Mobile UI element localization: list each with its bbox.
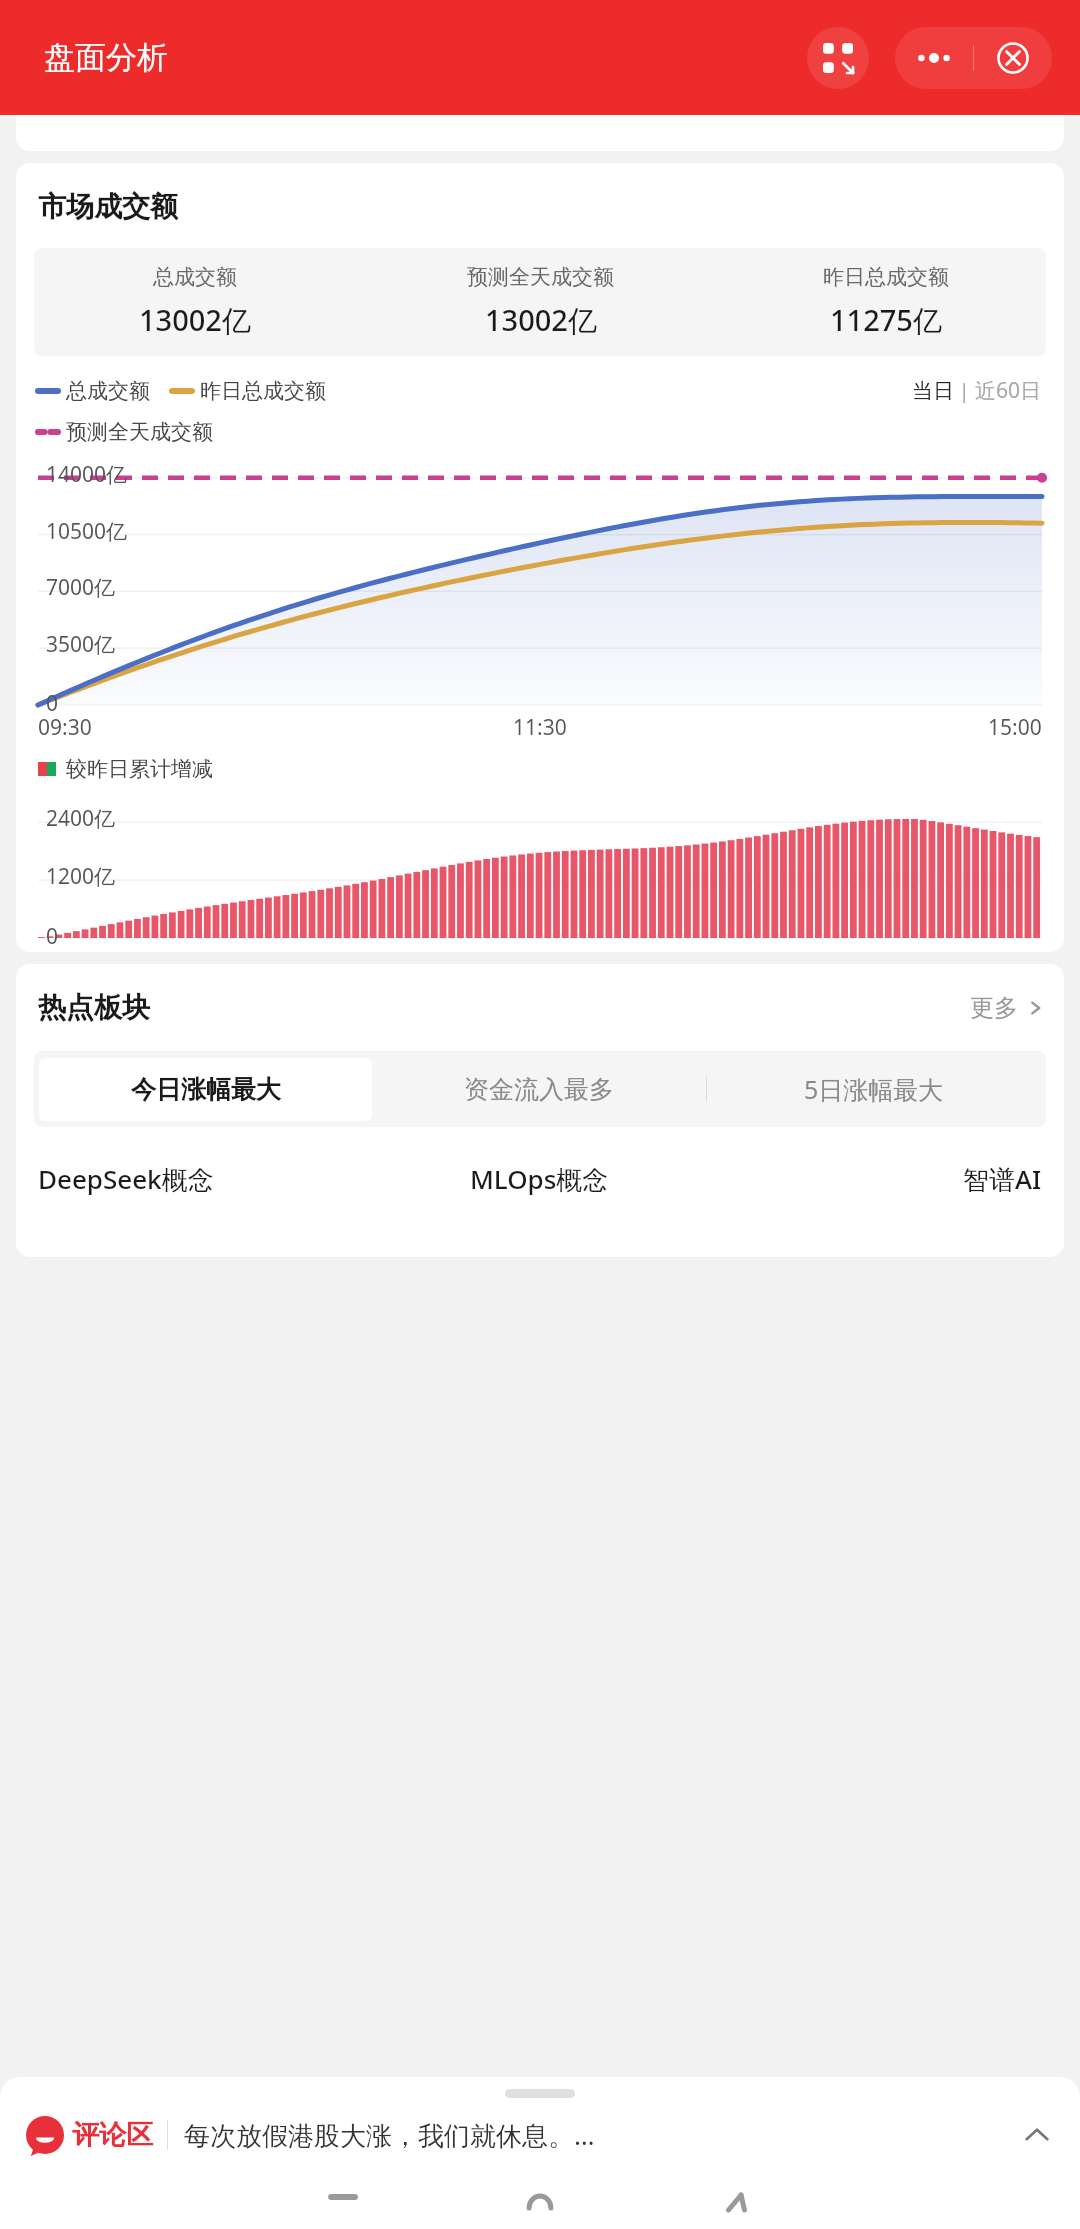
staticText: DeepSeek概念	[38, 1161, 214, 1197]
staticText: 资金流入最多	[464, 1074, 614, 1105]
staticText: 市场成交额	[38, 189, 178, 224]
staticText: 1200亿	[46, 862, 116, 891]
staticText: MLOps概念	[470, 1161, 609, 1197]
staticText: 09:30	[38, 713, 92, 742]
button[interactable]: 昨日总成交额	[172, 378, 326, 404]
staticText: 较昨日累计增减	[66, 756, 213, 782]
button[interactable]: 更多	[970, 993, 1044, 1023]
button[interactable]: 资金流入最多	[372, 1058, 706, 1121]
staticText: 13002亿	[485, 300, 597, 340]
button[interactable]: More options	[895, 27, 973, 89]
button[interactable]: 昨日总成交额	[725, 264, 1046, 340]
button[interactable]: 当日	[912, 378, 954, 404]
staticText: 昨日总成交额	[823, 264, 949, 290]
staticText: 今日涨幅最大	[131, 1074, 281, 1105]
staticText: 昨日总成交额	[200, 378, 326, 404]
staticText: 预测全天成交额	[66, 419, 213, 445]
staticText: 0	[46, 689, 59, 718]
staticText: 预测全天成交额	[467, 264, 614, 290]
staticText: 评论区	[72, 2118, 153, 2152]
button[interactable]: 预测全天成交额	[38, 419, 213, 445]
staticText: |	[954, 378, 975, 404]
staticText: 11275亿	[830, 300, 942, 340]
button[interactable]: 评论区	[0, 2077, 1080, 2180]
staticText: 15:00	[988, 713, 1042, 742]
button[interactable]: 近60日	[975, 376, 1042, 405]
button[interactable]: Close	[974, 27, 1052, 89]
button[interactable]: Expand comments	[1020, 2118, 1054, 2152]
staticText: 2400亿	[46, 804, 116, 833]
staticText: 总成交额	[153, 264, 237, 290]
staticText: 11:30	[513, 713, 567, 742]
staticText: 总成交额	[66, 378, 150, 404]
staticText: 10500亿	[46, 517, 128, 546]
staticText: 3500亿	[46, 630, 116, 659]
button[interactable]: Apps	[807, 27, 869, 89]
staticText: 7000亿	[46, 573, 116, 602]
staticText: 每次放假港股大涨，我们就休息。…	[184, 2117, 1010, 2153]
button[interactable]: 较昨日累计增减	[38, 756, 213, 782]
button[interactable]: DeepSeek概念	[38, 1161, 372, 1197]
staticText: 更多	[970, 993, 1018, 1023]
staticText: 5日涨幅最大	[804, 1072, 944, 1106]
button[interactable]: 预测全天成交额	[356, 264, 725, 340]
button[interactable]: 总成交额	[38, 378, 150, 404]
button[interactable]: 总成交额	[34, 264, 356, 340]
button[interactable]: 今日涨幅最大	[39, 1058, 372, 1121]
staticText: 盘面分析	[44, 38, 168, 77]
staticText: 0	[46, 922, 59, 951]
button[interactable]: 智谱AI	[707, 1161, 1042, 1197]
staticText: 14000亿	[46, 460, 128, 489]
staticText: 热点板块	[38, 990, 150, 1025]
staticText: 13002亿	[139, 300, 251, 340]
button[interactable]: MLOps概念	[372, 1161, 707, 1197]
staticText: 智谱AI	[963, 1161, 1042, 1197]
button[interactable]: 5日涨幅最大	[707, 1056, 1041, 1122]
